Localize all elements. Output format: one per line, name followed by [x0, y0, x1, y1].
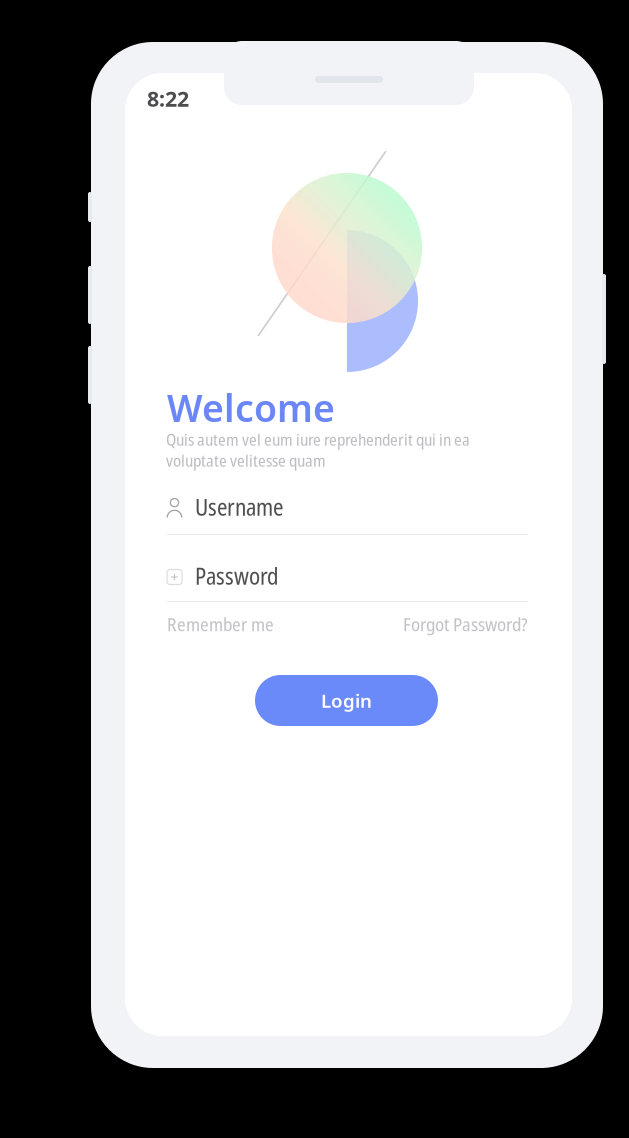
- staticText: Remember me: [167, 611, 274, 637]
- staticText: Login: [321, 688, 372, 713]
- button[interactable]: Forgot Password?: [403, 614, 528, 634]
- staticText: Password: [195, 561, 279, 591]
- staticText: Username: [195, 492, 283, 522]
- button[interactable]: Password: [167, 560, 528, 594]
- button[interactable]: Remember me: [167, 614, 274, 634]
- button[interactable]: Login: [255, 675, 438, 726]
- staticText: Welcome: [167, 382, 335, 433]
- staticText: 8:22: [147, 84, 189, 113]
- staticText: Forgot Password?: [403, 611, 528, 637]
- button[interactable]: Username: [167, 491, 528, 525]
- staticText: Quis autem vel eum iure reprehenderit qu…: [166, 428, 470, 451]
- staticText: voluptate velitesse quam: [166, 449, 326, 472]
